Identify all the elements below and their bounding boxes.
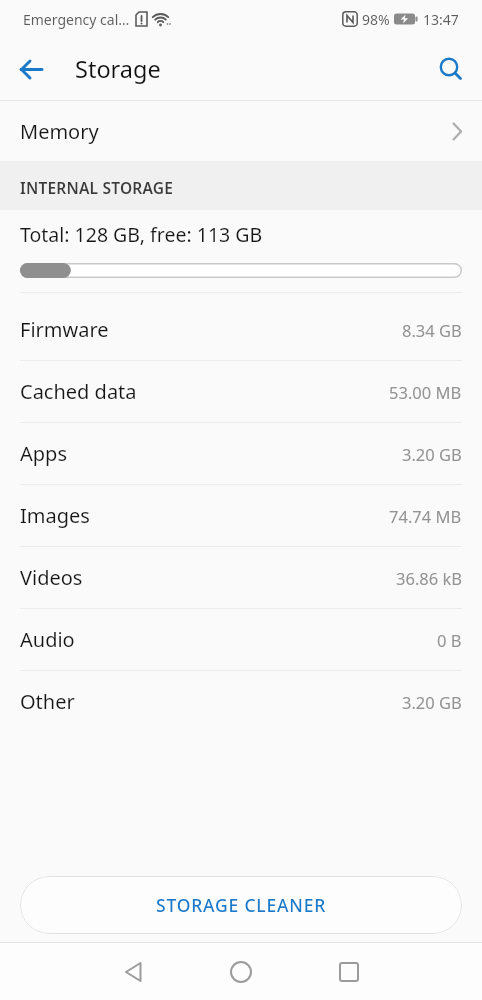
- button[interactable]: Memory: [0, 101, 482, 161]
- staticText: Cached data: [20, 378, 137, 405]
- button[interactable]: STORAGE CLEANER: [20, 876, 462, 934]
- staticText: Firmware: [20, 316, 109, 343]
- staticText: Apps: [20, 440, 67, 467]
- staticText: 36.86 kB: [396, 567, 462, 589]
- button[interactable]: Other: [0, 671, 482, 732]
- button[interactable]: [0, 38, 62, 100]
- button[interactable]: Apps: [0, 423, 482, 484]
- staticText: Other: [20, 688, 75, 715]
- button[interactable]: [295, 943, 403, 1000]
- button[interactable]: [187, 943, 295, 1000]
- staticText: 0 B: [437, 629, 462, 651]
- staticText: Images: [20, 502, 90, 529]
- staticText: Emergency cal…: [23, 10, 130, 29]
- staticText: Videos: [20, 564, 83, 591]
- button[interactable]: Firmware: [0, 299, 482, 360]
- staticText: 8.34 GB: [402, 319, 462, 341]
- staticText: 3.20 GB: [402, 443, 462, 465]
- staticText: 74.74 MB: [389, 505, 462, 527]
- button[interactable]: [420, 38, 482, 100]
- button[interactable]: [79, 943, 187, 1000]
- staticText: STORAGE CLEANER: [156, 893, 327, 917]
- staticText: Memory: [20, 118, 99, 145]
- staticText: Audio: [20, 626, 75, 653]
- staticText: Total: 128 GB, free: 113 GB: [20, 221, 263, 248]
- staticText: 3.20 GB: [402, 691, 462, 713]
- button[interactable]: Audio: [0, 609, 482, 670]
- staticText: 98%: [362, 10, 390, 29]
- staticText: Storage: [75, 53, 161, 85]
- button[interactable]: Images: [0, 485, 482, 546]
- staticText: 53.00 MB: [389, 381, 462, 403]
- button[interactable]: Cached data: [0, 361, 482, 422]
- staticText: INTERNAL STORAGE: [20, 177, 174, 198]
- staticText: 13:47: [423, 10, 459, 29]
- button[interactable]: Videos: [0, 547, 482, 608]
